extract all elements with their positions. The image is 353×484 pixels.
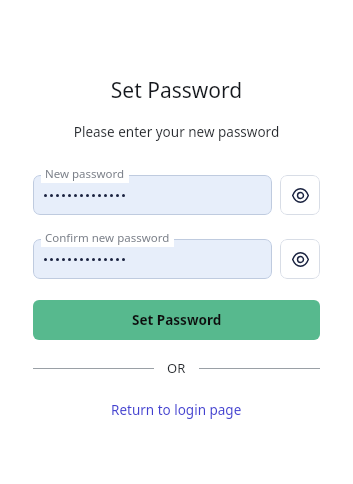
button[interactable]	[33, 175, 272, 215]
button[interactable]: Show Confirm new password	[280, 239, 320, 279]
staticText: Return to login page	[111, 401, 242, 419]
staticText: OR	[167, 359, 186, 377]
staticText: Set Password	[132, 311, 222, 329]
button[interactable]: Return to login page	[105, 397, 248, 423]
button[interactable]: Set Password	[33, 300, 320, 340]
button[interactable]	[33, 239, 272, 279]
staticText: Set Password	[33, 76, 320, 105]
staticText: Confirm new password	[45, 230, 170, 246]
button[interactable]: Show New password	[280, 175, 320, 215]
staticText: Please enter your new password	[33, 123, 320, 141]
staticText: New password	[45, 166, 125, 182]
